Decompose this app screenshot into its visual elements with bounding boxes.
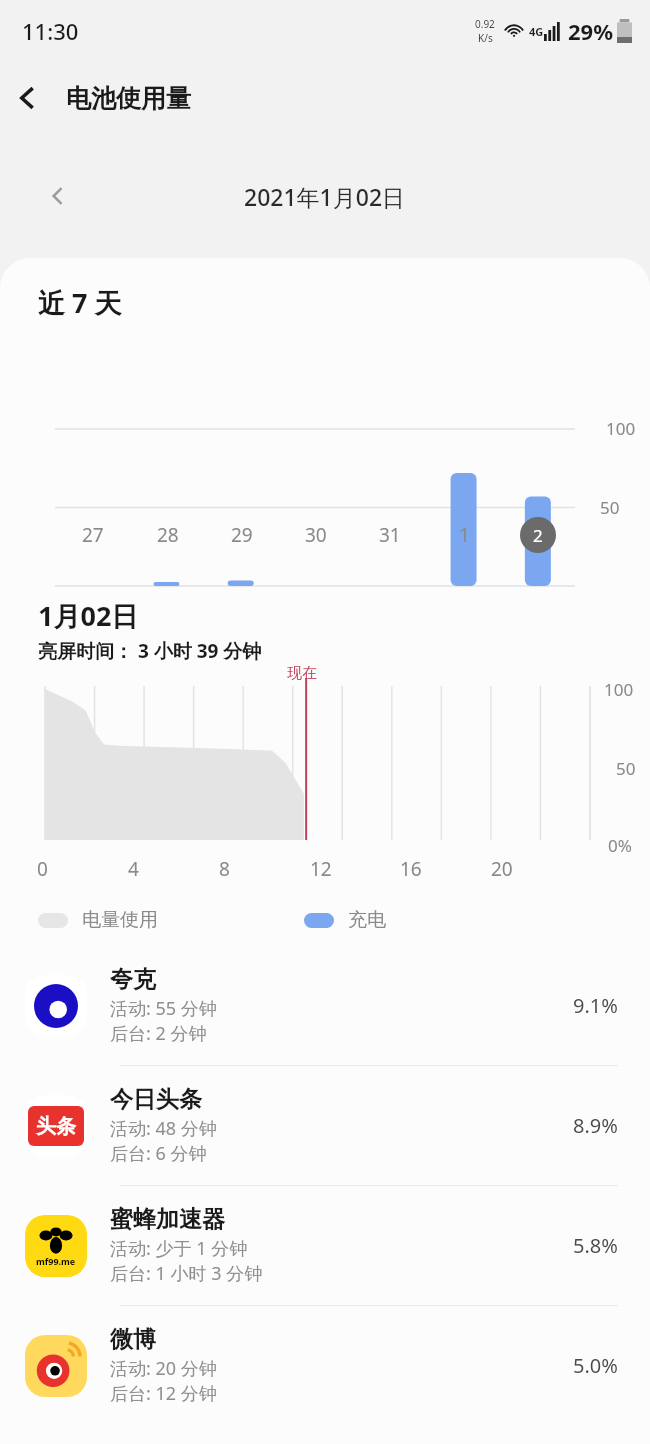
button[interactable]: 微博 [0,1306,650,1425]
staticText: 0% [608,834,632,857]
staticText: 头条 [36,1114,76,1139]
staticText: 1 [459,522,470,548]
staticText: 9.1% [573,992,618,1019]
staticText: 后台: 12 分钟 [110,1381,217,1406]
staticText: 12 [310,856,332,882]
staticText: 4G [529,24,544,39]
staticText: 5.0% [573,1352,618,1379]
button[interactable]: Back [0,70,56,126]
staticText: 2021年1月02日 [244,181,406,212]
staticText: 11:30 [22,16,79,46]
staticText: 后台: 2 分钟 [110,1021,207,1046]
staticText: 电池使用量 [66,83,191,114]
button[interactable]: 头条 [0,1066,650,1185]
button[interactable]: 夸克 [0,946,650,1065]
staticText: 50 [616,757,636,780]
staticText: 31 [379,522,401,548]
staticText: 29% [568,16,614,46]
staticText: 8 [219,856,230,882]
staticText: 0.92 [475,17,495,31]
staticText: 1月02日 [38,597,139,634]
staticText: 4 [128,856,139,882]
staticText: 夸克 [110,965,156,994]
staticText: mf99.me [36,1255,76,1267]
staticText: 电量使用 [82,908,158,932]
staticText: 5.8% [573,1232,618,1259]
staticText: 50 [600,496,620,519]
staticText: 活动: 20 分钟 [110,1356,217,1381]
button[interactable]: mf99.me [0,1186,650,1305]
staticText: 28 [157,522,179,548]
staticText: 现在 [287,664,317,683]
staticText: 后台: 1 小时 3 分钟 [110,1261,263,1286]
staticText: K/s [478,31,493,45]
staticText: 2 [533,524,543,547]
staticText: 0 [37,856,48,882]
button[interactable]: 2 [520,517,556,553]
staticText: 活动: 48 分钟 [110,1116,217,1141]
staticText: 今日头条 [110,1085,202,1114]
staticText: 16 [400,856,422,882]
staticText: 30 [305,522,327,548]
staticText: 20 [491,856,513,882]
staticText: 近 7 天 [38,284,122,321]
staticText: 100 [604,678,634,701]
staticText: 8.9% [573,1112,618,1139]
staticText: 微博 [110,1325,156,1354]
staticText: 亮屏时间： 3 小时 39 分钟 [38,638,262,664]
staticText: 100 [606,417,636,440]
staticText: 蜜蜂加速器 [110,1205,225,1234]
staticText: 29 [231,522,253,548]
staticText: 27 [82,522,104,548]
staticText: 后台: 6 分钟 [110,1141,207,1166]
staticText: 活动: 55 分钟 [110,996,217,1021]
staticText: 活动: 少于 1 分钟 [110,1236,248,1261]
staticText: 充电 [348,908,386,932]
button[interactable]: Previous day [34,172,82,220]
